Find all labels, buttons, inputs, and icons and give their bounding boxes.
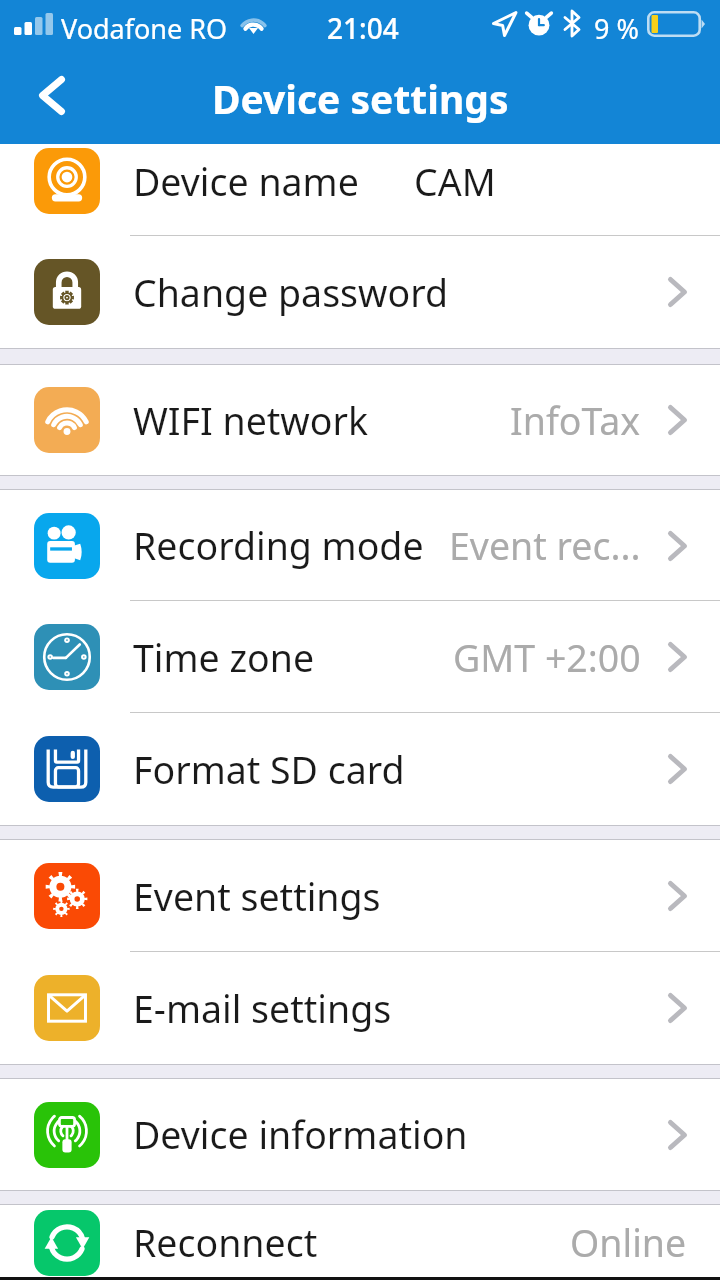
staticText: Event rec... [449,520,641,571]
staticText: Device information [133,1109,468,1160]
staticText: Reconnect [133,1217,318,1268]
button[interactable]: Format SD card [0,713,720,825]
staticText: 21:04 [327,9,399,47]
staticText: Recording mode [133,520,424,571]
staticText: Device settings [212,72,509,125]
button[interactable]: Device information [0,1079,720,1190]
staticText: Vodafone RO [61,10,228,47]
button[interactable]: E-mail settings [0,952,720,1064]
button[interactable]: WIFI network [0,365,720,475]
staticText: Change password [133,267,449,318]
button[interactable]: Event settings [0,840,720,952]
staticText: E-mail settings [133,983,392,1034]
staticText: 9 % [594,10,639,47]
button[interactable]: Reconnect [0,1205,720,1280]
staticText: InfoTax [510,395,641,446]
staticText: Format SD card [133,744,405,795]
staticText: WIFI network [133,395,369,446]
staticText: Time zone [133,632,315,683]
button[interactable]: Device name [0,144,720,236]
button[interactable]: Change password [0,236,720,348]
staticText: Online [570,1217,687,1268]
staticText: GMT +2:00 [453,632,641,683]
staticText: Device name [133,156,359,207]
button[interactable]: Back [0,55,100,144]
button[interactable]: Time zone [0,601,720,713]
button[interactable]: Recording mode [0,490,720,601]
staticText: CAM [414,156,496,207]
staticText: Event settings [133,871,381,922]
